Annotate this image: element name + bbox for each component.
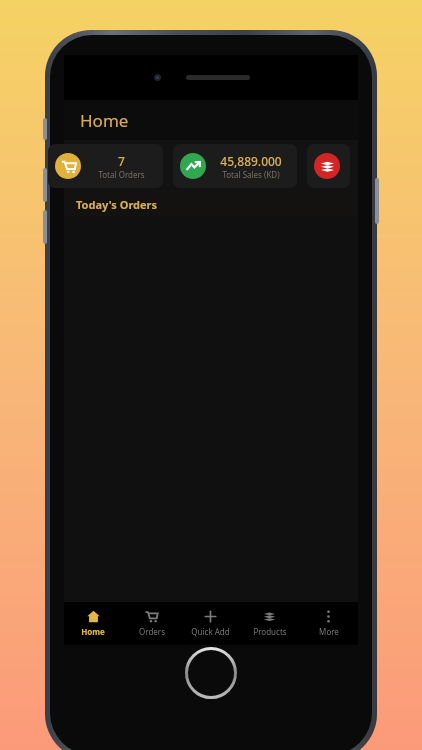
button[interactable] [307,144,350,188]
button[interactable]: Home button [185,647,237,699]
staticText: More [319,626,339,637]
staticText: Products [253,626,287,637]
button[interactable]: Orders [122,606,181,641]
staticText: Quick Add [191,626,230,637]
staticText: Total Sales (KD) [222,169,280,180]
staticText: Total Orders [98,169,145,180]
staticText: 45,889.000 [220,153,282,169]
button[interactable]: 45,889.000 [173,144,297,188]
button[interactable]: Home [64,606,122,641]
staticText: 7 [118,153,125,169]
button[interactable]: Quick Add [181,606,240,641]
button[interactable]: Products [240,606,299,641]
staticText: Today's Orders [76,197,158,212]
button[interactable]: 7 [48,144,163,188]
staticText: Orders [139,626,165,637]
button[interactable]: More [299,606,358,641]
staticText: Home [80,109,129,132]
staticText: Home [81,626,105,637]
